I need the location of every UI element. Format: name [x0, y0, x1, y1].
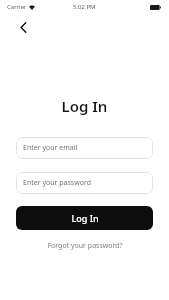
button[interactable]: Log In	[16, 206, 153, 230]
staticText: Log In	[0, 96, 169, 116]
staticText: Enter your email	[23, 143, 78, 153]
button[interactable]: Forgot your password?	[0, 239, 169, 253]
staticText: Log In	[71, 212, 99, 224]
staticText: Carrier	[7, 3, 27, 11]
button[interactable]: Enter your email	[16, 137, 153, 159]
staticText: Enter your password	[23, 178, 91, 188]
button[interactable]: Back	[13, 17, 33, 37]
staticText: Forgot your password?	[47, 241, 123, 251]
button[interactable]: Enter your password	[16, 172, 153, 194]
staticText: 5:02 PM	[73, 3, 96, 11]
